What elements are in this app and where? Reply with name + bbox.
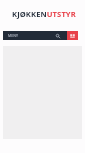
other: Search [55,33,61,39]
button[interactable]: Shopping cart [67,31,78,40]
button[interactable]: MENY [3,31,67,40]
staticText: MENY [8,33,19,38]
staticText: KJØKKENUTSTYR [12,9,76,19]
